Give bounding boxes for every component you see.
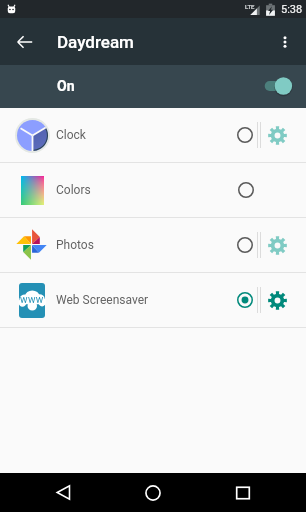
staticText: Web Screensaver (56, 293, 149, 307)
staticText: Photos (56, 238, 94, 252)
staticText: LTE (245, 3, 255, 10)
button[interactable]: Settings for Photos (267, 229, 300, 262)
staticText: 5:38 (281, 3, 303, 16)
button[interactable]: Recent apps (214, 473, 272, 512)
button[interactable]: Colors (0, 163, 306, 217)
button[interactable]: Home (124, 473, 182, 512)
button[interactable]: Back (35, 473, 93, 512)
button[interactable]: Select Photos (224, 226, 262, 264)
button[interactable]: Settings for Web Screensaver (267, 284, 300, 317)
button[interactable]: Navigate up (4, 21, 46, 63)
button[interactable]: On (0, 65, 306, 108)
staticText: Colors (56, 183, 91, 197)
button[interactable]: Photos (0, 218, 306, 272)
staticText: Daydream (57, 32, 134, 52)
button[interactable]: Select Clock (224, 116, 262, 154)
staticText: www (20, 294, 44, 306)
button[interactable]: www (0, 273, 306, 327)
button[interactable]: Select Web Screensaver (224, 281, 262, 319)
button[interactable]: Settings for Clock (267, 119, 300, 152)
staticText: Clock (56, 128, 86, 142)
staticText: On (57, 78, 75, 94)
button[interactable]: Select Colors (225, 171, 263, 209)
button[interactable]: More options (264, 21, 306, 63)
button[interactable]: Clock (0, 108, 306, 162)
